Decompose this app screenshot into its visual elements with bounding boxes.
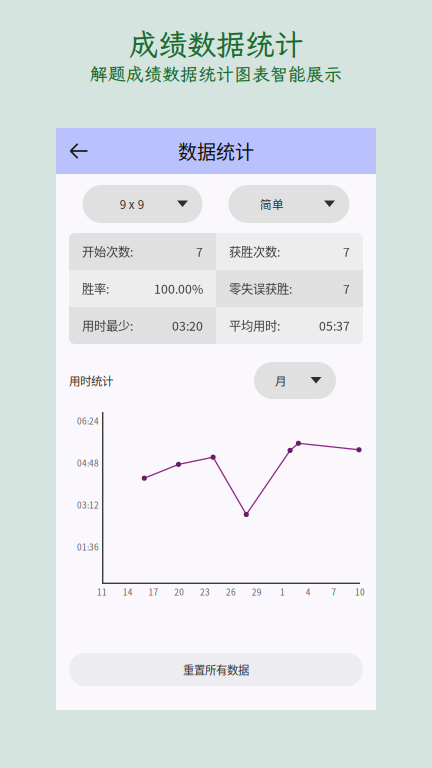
staticText: 月 [275,372,287,389]
staticText: 7 [332,586,337,598]
staticText: 7 [196,243,203,260]
staticText: 数据统计 [178,137,254,165]
button[interactable]: Back [56,128,102,174]
staticText: 01:36 [77,541,99,553]
staticText: 10 [355,586,365,598]
button[interactable]: 9 x 9 [82,185,202,223]
staticText: 重置所有数据 [183,661,249,678]
staticText: 20 [174,586,184,598]
staticText: 胜率: [82,280,109,297]
staticText: 11 [97,586,107,598]
staticText: 06:24 [77,415,99,427]
staticText: 26 [226,586,236,598]
button[interactable]: 简单 [228,185,349,223]
staticText: 4 [306,586,311,598]
staticText: 29 [252,586,262,598]
staticText: 用时最少: [82,317,133,334]
staticText: 17 [148,586,158,598]
button[interactable]: 月 [254,362,336,399]
staticText: 03:20 [172,317,203,334]
staticText: 05:37 [319,317,350,334]
button[interactable]: 重置所有数据 [69,653,363,686]
staticText: 100.00% [154,280,203,297]
staticText: 获胜次数: [229,243,280,260]
staticText: 零失误获胜: [229,280,292,297]
staticText: 23 [200,586,210,598]
staticText: 平均用时: [229,317,280,334]
staticText: 解题成绩数据统计图表智能展示 [90,62,342,86]
staticText: 7 [343,243,350,260]
staticText: 简单 [260,196,284,212]
staticText: 用时统计 [69,372,113,389]
staticText: 开始次数: [82,243,133,260]
staticText: 03:12 [77,499,99,511]
staticText: 7 [343,280,350,297]
staticText: 1 [280,586,285,598]
staticText: 14 [123,586,133,598]
staticText: 9 x 9 [120,196,144,212]
staticText: 成绩数据统计 [129,25,303,63]
staticText: 04:48 [77,457,99,469]
